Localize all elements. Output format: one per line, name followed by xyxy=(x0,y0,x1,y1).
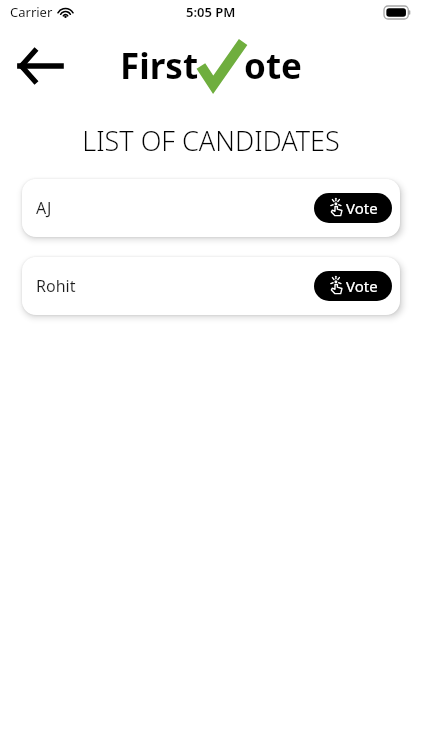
staticText: Rohit xyxy=(36,275,76,297)
staticText: LIST OF CANDIDATES xyxy=(0,122,422,159)
button[interactable]: Vote xyxy=(314,193,392,223)
button[interactable]: Vote xyxy=(314,271,392,301)
staticText: Carrier xyxy=(10,3,53,21)
staticText: First xyxy=(120,42,199,90)
staticText: 5:05 PM xyxy=(186,3,236,21)
staticText: Vote xyxy=(346,276,378,296)
staticText: ote xyxy=(244,42,302,90)
button[interactable]: AJ xyxy=(22,179,400,237)
staticText: AJ xyxy=(36,197,52,219)
button[interactable]: Rohit xyxy=(22,257,400,315)
staticText: Vote xyxy=(346,198,378,218)
button[interactable]: Back xyxy=(12,38,68,94)
